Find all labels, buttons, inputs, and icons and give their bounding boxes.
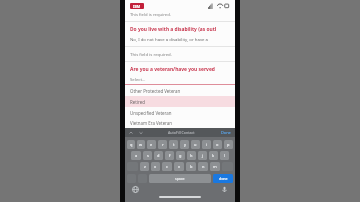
- staticText: Done: [221, 130, 231, 135]
- staticText: Unspecified Veteran: [130, 110, 172, 116]
- button[interactable]: r: [158, 140, 167, 149]
- button[interactable]: v: [174, 162, 184, 171]
- button[interactable]: l: [220, 151, 229, 160]
- button[interactable]: done: [213, 174, 233, 183]
- staticText: done: [219, 176, 228, 181]
- staticText: g: [179, 153, 182, 158]
- staticText: n: [202, 164, 205, 169]
- button[interactable]: n: [198, 162, 208, 171]
- button[interactable]: k: [209, 151, 218, 160]
- button[interactable]: x: [151, 162, 160, 171]
- staticText: Select...: [130, 76, 146, 82]
- staticText: h: [190, 153, 193, 158]
- staticText: q: [130, 142, 133, 147]
- staticText: Vietnam Era Veteran: [130, 120, 173, 126]
- staticText: IBM: [133, 4, 141, 9]
- staticText: r: [162, 142, 164, 147]
- button[interactable]: Dictation: [221, 186, 228, 193]
- staticText: l: [224, 153, 226, 158]
- button[interactable]: space: [149, 174, 211, 183]
- staticText: t: [173, 142, 175, 147]
- staticText: Other Protected Veteran: [130, 88, 181, 94]
- button[interactable]: a: [131, 151, 141, 160]
- staticText: c: [166, 164, 168, 169]
- staticText: e: [150, 142, 153, 147]
- staticText: This field is required.: [130, 51, 172, 57]
- staticText: b: [190, 164, 193, 169]
- button[interactable]: e: [147, 140, 156, 149]
- staticText: u: [194, 142, 197, 147]
- button[interactable]: q: [127, 140, 135, 149]
- staticText: p: [227, 142, 230, 147]
- button[interactable]: i: [202, 140, 211, 149]
- button[interactable]: f: [165, 151, 174, 160]
- button[interactable]: j: [198, 151, 207, 160]
- staticText: m: [213, 164, 217, 169]
- staticText: d: [157, 153, 160, 158]
- staticText: Retired: [130, 99, 145, 105]
- button[interactable]: Next field: [138, 130, 144, 136]
- button[interactable]: y: [180, 140, 189, 149]
- button[interactable]: p: [224, 140, 233, 149]
- button[interactable]: Other Protected Veteran: [125, 85, 235, 96]
- button[interactable]: d: [154, 151, 163, 160]
- button[interactable]: Change keyboard: [132, 186, 139, 193]
- staticText: w: [139, 142, 143, 147]
- button[interactable]: o: [213, 140, 222, 149]
- button[interactable]: Done: [220, 129, 232, 136]
- staticText: a: [135, 153, 138, 158]
- button[interactable]: g: [176, 151, 185, 160]
- button[interactable]: u: [191, 140, 200, 149]
- button[interactable]: Previous field: [128, 130, 134, 136]
- staticText: AutoFill Contact: [168, 130, 195, 135]
- staticText: space: [175, 176, 185, 181]
- staticText: k: [212, 153, 215, 158]
- button[interactable]: t: [169, 140, 178, 149]
- staticText: i: [206, 142, 208, 147]
- staticText: y: [184, 142, 186, 147]
- button[interactable]: c: [162, 162, 172, 171]
- staticText: s: [147, 153, 149, 158]
- staticText: j: [202, 153, 204, 158]
- staticText: f: [169, 153, 171, 158]
- button[interactable]: m: [210, 162, 220, 171]
- staticText: x: [154, 164, 157, 169]
- button[interactable]: IBM logo: [130, 3, 144, 9]
- button[interactable]: b: [186, 162, 196, 171]
- staticText: v: [178, 164, 180, 169]
- button[interactable]: w: [137, 140, 145, 149]
- button[interactable]: Retired: [125, 96, 235, 107]
- button[interactable]: s: [143, 151, 152, 160]
- staticText: o: [216, 142, 219, 147]
- button[interactable]: z: [140, 162, 149, 171]
- staticText: Do you live with a disability (as outl: [130, 26, 217, 33]
- staticText: This field is required.: [130, 12, 171, 18]
- button[interactable]: Unspecified Veteran: [125, 107, 235, 118]
- staticText: No, I do not have a disability, or have …: [130, 36, 209, 42]
- button[interactable]: Vietnam Era Veteran: [125, 118, 235, 128]
- staticText: z: [144, 164, 146, 169]
- button[interactable]: h: [187, 151, 196, 160]
- staticText: Are you a veteran/have you served: [130, 66, 215, 73]
